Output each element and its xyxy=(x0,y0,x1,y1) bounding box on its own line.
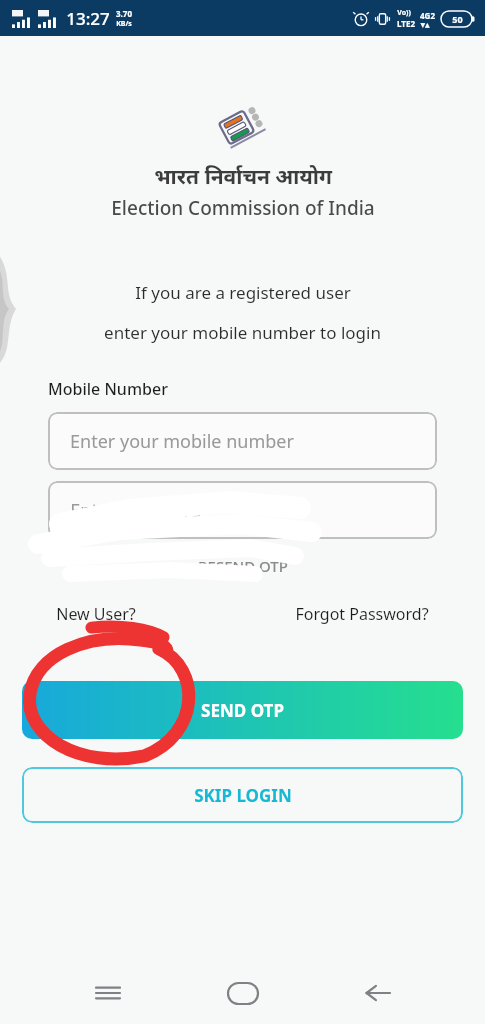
button[interactable]: Recent apps xyxy=(82,967,134,1019)
staticText: enter your mobile number to login xyxy=(104,321,381,344)
button[interactable]: New User? xyxy=(50,599,142,629)
staticText: SKIP LOGIN xyxy=(194,784,292,807)
button[interactable]: Back xyxy=(351,967,403,1019)
staticText: Election Commission of India xyxy=(111,195,375,221)
staticText: SEND OTP xyxy=(201,699,284,722)
staticText: Mobile Number xyxy=(48,378,168,400)
staticText: If you are a registered user xyxy=(135,281,351,304)
button[interactable]: SKIP LOGIN xyxy=(22,767,463,823)
staticText: Vo)) xyxy=(397,8,411,18)
staticText: ▼▲ xyxy=(420,21,430,28)
button[interactable]: RESEND OTP xyxy=(188,553,298,579)
button[interactable]: SEND OTP xyxy=(22,681,463,739)
staticText: भारत निर्वाचन आयोग xyxy=(154,162,332,191)
staticText: Enter your mobile number xyxy=(70,429,294,454)
staticText: New User? xyxy=(56,603,136,625)
staticText: RESEND OTP xyxy=(198,556,288,576)
button[interactable]: Enter your mobile number xyxy=(48,412,437,470)
staticText: KB/s xyxy=(116,19,132,29)
staticText: Forgot Password? xyxy=(295,603,429,625)
staticText: Enter Password xyxy=(70,498,202,523)
staticText: 13:27 xyxy=(66,7,110,30)
button[interactable]: Enter Password xyxy=(48,481,437,539)
button[interactable]: Home xyxy=(217,967,269,1019)
staticText: LTE2 xyxy=(397,18,415,29)
staticText: 4G2 xyxy=(420,10,435,21)
staticText: 50 xyxy=(452,13,463,25)
button[interactable]: Forgot Password? xyxy=(289,599,435,629)
staticText: 3.70 xyxy=(116,8,132,19)
